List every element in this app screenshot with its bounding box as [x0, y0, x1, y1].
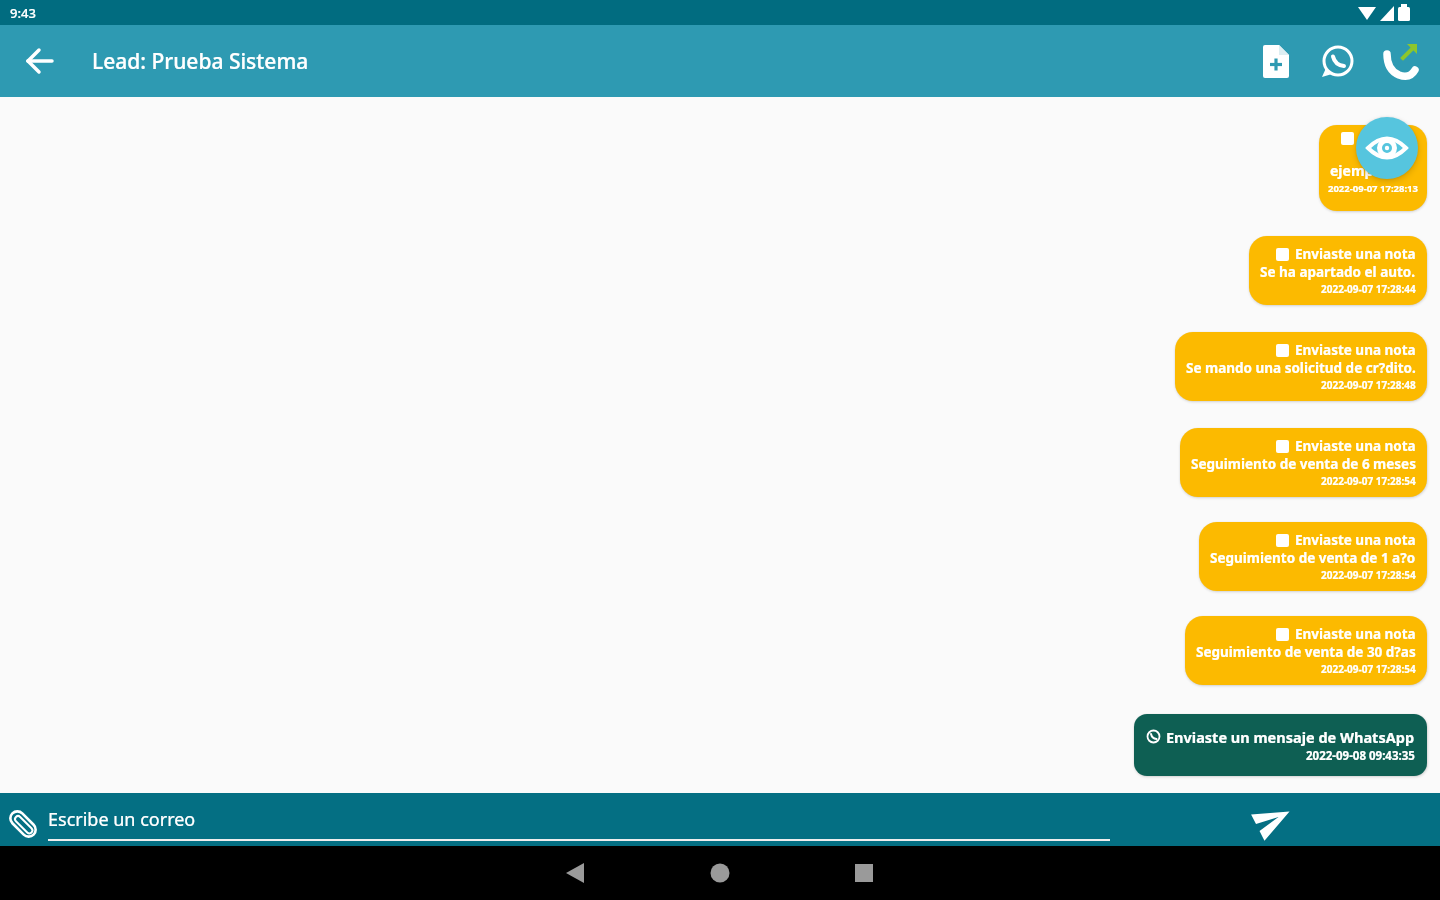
- staticText: Seguimiento de venta de 30 d?as: [1196, 643, 1416, 661]
- staticText: Enviaste una nota: [1295, 341, 1416, 359]
- button[interactable]: Enviaste una nota: [1249, 236, 1427, 305]
- staticText: Enviaste un mensaje de WhatsApp: [1166, 727, 1415, 747]
- button[interactable]: [1376, 37, 1424, 85]
- staticText: Enviaste una nota: [1295, 437, 1416, 455]
- button[interactable]: Enviaste una nota: [1180, 428, 1427, 497]
- button[interactable]: [1252, 37, 1300, 85]
- staticText: 2022-09-07 17:28:54: [1321, 474, 1416, 488]
- staticText: Seguimiento de venta de 6 meses: [1191, 455, 1416, 473]
- staticText: 2022-09-07 17:28:13: [1328, 182, 1418, 195]
- staticText: 9:43: [10, 4, 36, 22]
- button[interactable]: [1252, 798, 1296, 842]
- staticText: 2022-09-07 17:28:44: [1321, 282, 1416, 296]
- staticText: Seguimiento de venta de 1 a?o: [1210, 549, 1416, 567]
- button[interactable]: ejemp...: [1319, 125, 1427, 211]
- staticText: Enviaste una nota: [1295, 531, 1416, 549]
- staticText: Escribe un correo: [48, 807, 196, 832]
- staticText: 2022-09-07 17:28:48: [1321, 378, 1416, 392]
- button[interactable]: [1356, 117, 1418, 179]
- staticText: Enviaste una nota: [1295, 625, 1416, 643]
- button[interactable]: Enviaste un mensaje de WhatsApp: [1134, 714, 1427, 776]
- button[interactable]: Escribe un correo: [48, 807, 196, 832]
- button[interactable]: Enviaste una nota: [1185, 616, 1427, 685]
- button[interactable]: Enviaste una nota: [1199, 522, 1427, 591]
- staticText: 2022-09-08 09:43:35: [1306, 748, 1415, 764]
- staticText: Se ha apartado el auto.: [1260, 263, 1416, 281]
- button[interactable]: [480, 846, 960, 900]
- staticText: Lead: Prueba Sistema: [92, 47, 309, 76]
- staticText: Enviaste una nota: [1295, 245, 1416, 263]
- staticText: 2022-09-07 17:28:54: [1321, 568, 1416, 582]
- staticText: 2022-09-07 17:28:54: [1321, 662, 1416, 676]
- staticText: Se mando una solicitud de cr?dito.: [1186, 359, 1416, 377]
- button[interactable]: [18, 39, 62, 83]
- button[interactable]: [0, 798, 44, 842]
- staticText: ejemp...: [1330, 161, 1386, 180]
- button[interactable]: [1314, 37, 1362, 85]
- button[interactable]: Enviaste una nota: [1175, 332, 1427, 401]
